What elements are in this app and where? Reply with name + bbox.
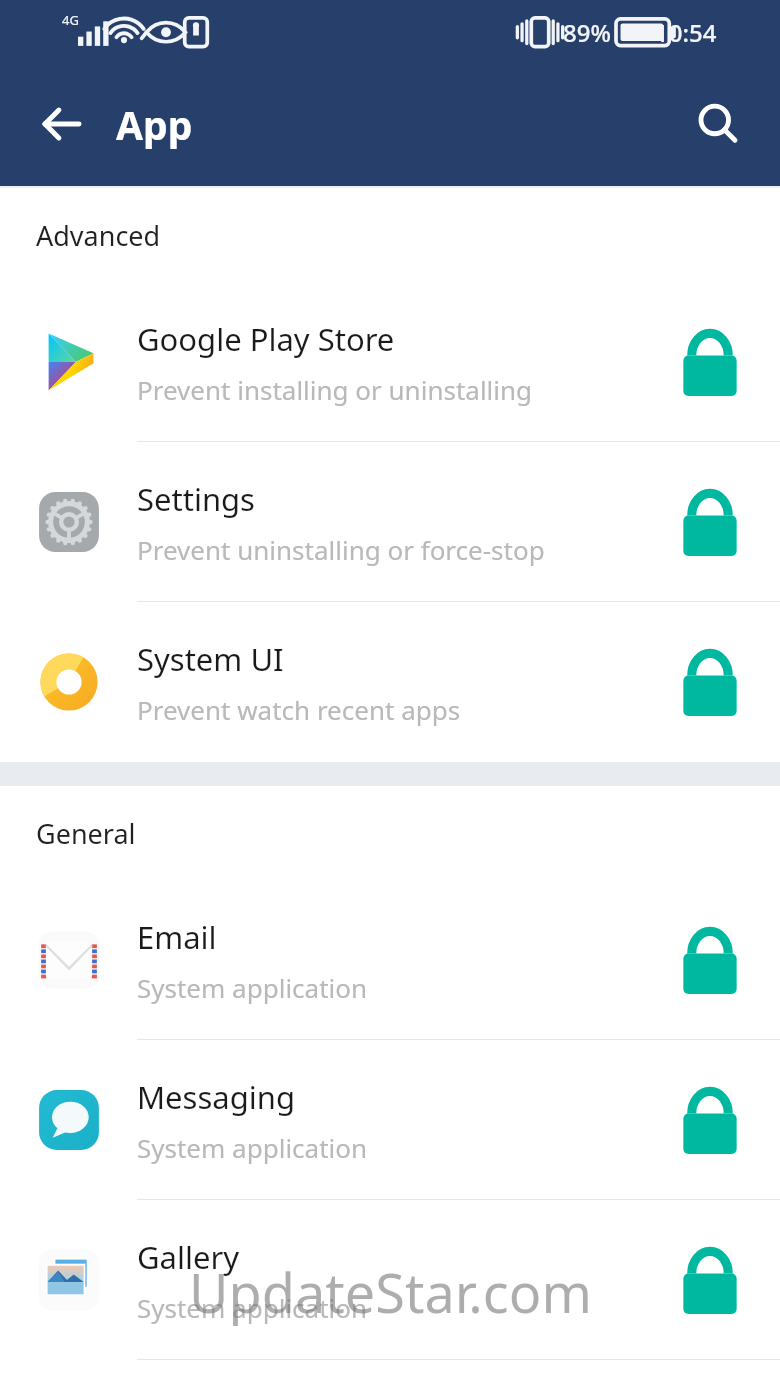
staticText: Prevent uninstalling or force-stop xyxy=(137,532,545,567)
staticText: 4G xyxy=(62,11,79,29)
button[interactable]: Settings xyxy=(0,442,780,602)
staticText: 89% xyxy=(563,16,611,49)
staticText: System application xyxy=(137,1130,368,1165)
button[interactable]: Locked: Settings xyxy=(677,489,743,555)
button[interactable]: Locked: Google Play Store xyxy=(677,329,743,395)
staticText: Prevent watch recent apps xyxy=(137,692,461,727)
button[interactable]: Locked: Email xyxy=(677,927,743,993)
button[interactable]: Back xyxy=(22,84,102,164)
staticText: Settings xyxy=(137,478,255,520)
button[interactable]: Gallery xyxy=(0,1200,780,1360)
button[interactable]: Locked: Gallery xyxy=(677,1247,743,1313)
staticText: System application xyxy=(137,1290,368,1325)
staticText: Google Play Store xyxy=(137,318,395,360)
button[interactable]: Locked: System UI xyxy=(677,649,743,715)
staticText: Gallery xyxy=(137,1236,240,1278)
button[interactable]: Email xyxy=(0,880,780,1040)
button[interactable]: Google Play Store xyxy=(0,282,780,442)
button[interactable]: Search xyxy=(678,84,758,164)
staticText: System application xyxy=(137,970,368,1005)
staticText: Messaging xyxy=(137,1076,295,1118)
button[interactable]: Messaging xyxy=(0,1040,780,1200)
staticText: Prevent installing or uninstalling xyxy=(137,372,533,407)
staticText: Email xyxy=(137,916,217,958)
staticText: UpdateStar.com xyxy=(189,1255,592,1329)
button[interactable]: Locked: Messaging xyxy=(677,1087,743,1153)
button[interactable]: System UI xyxy=(0,602,780,762)
staticText: Advanced xyxy=(36,217,161,254)
staticText: General xyxy=(36,815,136,852)
staticText: App xyxy=(116,98,193,151)
staticText: System UI xyxy=(137,638,284,680)
staticText: 10:54 xyxy=(655,16,717,49)
